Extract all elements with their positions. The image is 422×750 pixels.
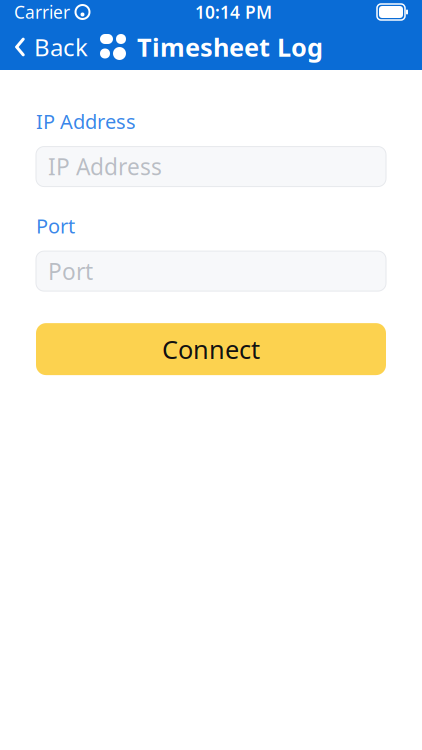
button[interactable]: Port: [36, 251, 386, 291]
staticText: Port: [48, 256, 93, 286]
staticText: Timesheet Log: [137, 30, 323, 64]
staticText: 10:14 PM: [195, 0, 272, 23]
button[interactable]: IP Address: [36, 147, 386, 187]
staticText: Back: [34, 31, 88, 63]
staticText: IP Address: [36, 108, 136, 135]
staticText: IP Address: [48, 151, 162, 182]
staticText: Connect: [162, 332, 260, 366]
staticText: Port: [36, 213, 75, 239]
staticText: Carrier: [14, 0, 70, 23]
button[interactable]: Connect: [36, 323, 386, 375]
